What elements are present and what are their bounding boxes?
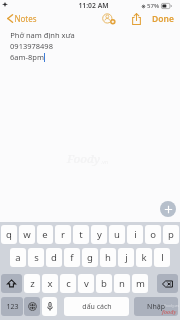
staticText: d [51, 251, 57, 264]
button[interactable]: n [114, 274, 130, 293]
staticText: c [66, 277, 71, 290]
button[interactable]: h [100, 248, 116, 267]
staticText: p [168, 228, 174, 241]
staticText: f [70, 251, 74, 264]
staticText: e [42, 228, 48, 241]
button[interactable]: Next keyboard [24, 297, 40, 316]
button[interactable]: k [136, 248, 152, 267]
staticText: l [161, 251, 164, 264]
staticText: Notes [14, 13, 37, 24]
button[interactable]: q [1, 225, 17, 244]
button[interactable]: y [91, 225, 107, 244]
staticText: dấu cách [82, 302, 112, 312]
button[interactable]: i [127, 225, 143, 244]
staticText: 11:02 AM [78, 1, 109, 10]
staticText: r [61, 228, 65, 241]
button[interactable]: u [109, 225, 125, 244]
button[interactable]: b [96, 274, 112, 293]
button[interactable]: 123 [1, 297, 23, 316]
button[interactable]: Backspace [157, 274, 178, 293]
staticText: m [136, 277, 145, 290]
button[interactable]: Done [151, 10, 175, 26]
button[interactable]: o [145, 225, 161, 244]
staticText: g [87, 251, 93, 264]
staticText: foody [162, 309, 177, 316]
button[interactable]: Shift [1, 274, 22, 293]
staticText: t [79, 228, 83, 241]
staticText: i [134, 228, 137, 241]
staticText: b [101, 277, 107, 290]
button[interactable]: Share [130, 12, 143, 25]
button[interactable]: j [118, 248, 134, 267]
staticText: z [30, 277, 35, 290]
button[interactable]: z [24, 274, 40, 293]
button[interactable]: p [163, 225, 179, 244]
staticText: x [47, 277, 53, 290]
staticText: Nhập [147, 302, 165, 312]
button[interactable]: e [37, 225, 53, 244]
staticText: h [105, 251, 111, 264]
staticText: 57% [147, 2, 159, 10]
staticText: k [141, 251, 147, 264]
button[interactable]: x [42, 274, 58, 293]
staticText: Phở nam định xưa [10, 30, 75, 40]
staticText: s [34, 251, 39, 264]
button[interactable]: r [55, 225, 71, 244]
staticText: Foody.vn [164, 303, 179, 308]
button[interactable]: Dictate [42, 297, 57, 316]
button[interactable]: Add people [101, 11, 116, 26]
staticText: 123 [6, 302, 19, 312]
staticText: q [6, 228, 12, 241]
button[interactable]: dấu cách [64, 297, 129, 316]
staticText: y [97, 228, 102, 241]
staticText: n [119, 277, 125, 290]
button[interactable]: d [46, 248, 62, 267]
staticText: u [114, 228, 120, 241]
staticText: o [150, 228, 156, 241]
button[interactable]: f [64, 248, 80, 267]
button[interactable]: w [19, 225, 35, 244]
button[interactable]: Nhập [134, 297, 178, 316]
staticText: a [15, 251, 21, 264]
button[interactable]: t [73, 225, 89, 244]
button[interactable]: s [28, 248, 44, 267]
staticText: 0913978498 [10, 41, 53, 51]
button[interactable]: c [60, 274, 76, 293]
staticText: j [125, 251, 128, 264]
staticText: Done [152, 13, 174, 23]
button[interactable]: Add attachment [160, 201, 176, 217]
button[interactable]: a [10, 248, 26, 267]
staticText: v [84, 277, 89, 290]
button[interactable]: v [78, 274, 94, 293]
button[interactable]: Notes [2, 11, 41, 26]
staticText: w [23, 228, 31, 241]
button[interactable]: m [132, 274, 148, 293]
button[interactable]: l [154, 248, 170, 267]
staticText: 6am-8pm [10, 52, 44, 62]
button[interactable]: g [82, 248, 98, 267]
